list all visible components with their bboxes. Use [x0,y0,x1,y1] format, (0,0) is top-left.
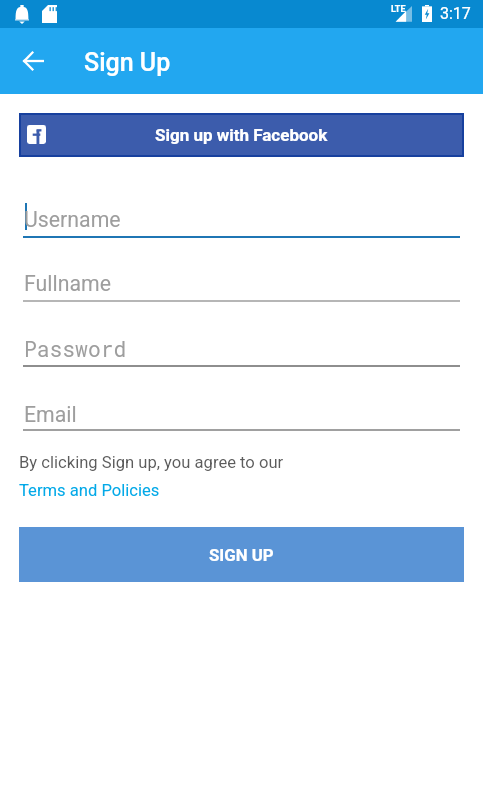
staticText: By clicking Sign up, you agree to our [19,453,284,472]
button[interactable]: Fullname [19,262,464,306]
button[interactable]: Username [19,198,464,242]
staticText: Fullname [24,271,111,296]
staticText: Password [24,335,127,363]
staticText: 3:17 [440,4,471,23]
button[interactable]: Back [11,39,55,83]
button[interactable]: SIGN UP [19,527,464,582]
staticText: Email [24,402,77,427]
staticText: LTE [391,4,406,15]
button[interactable]: Terms and Policies [19,481,160,500]
staticText: Sign up with Facebook [155,125,328,145]
staticText: Sign Up [84,48,171,77]
button[interactable]: Email [19,391,464,435]
button[interactable]: Sign up with Facebook [19,113,464,157]
button[interactable]: Password [19,327,464,371]
staticText: Username [24,207,121,232]
staticText: SIGN UP [209,545,274,565]
